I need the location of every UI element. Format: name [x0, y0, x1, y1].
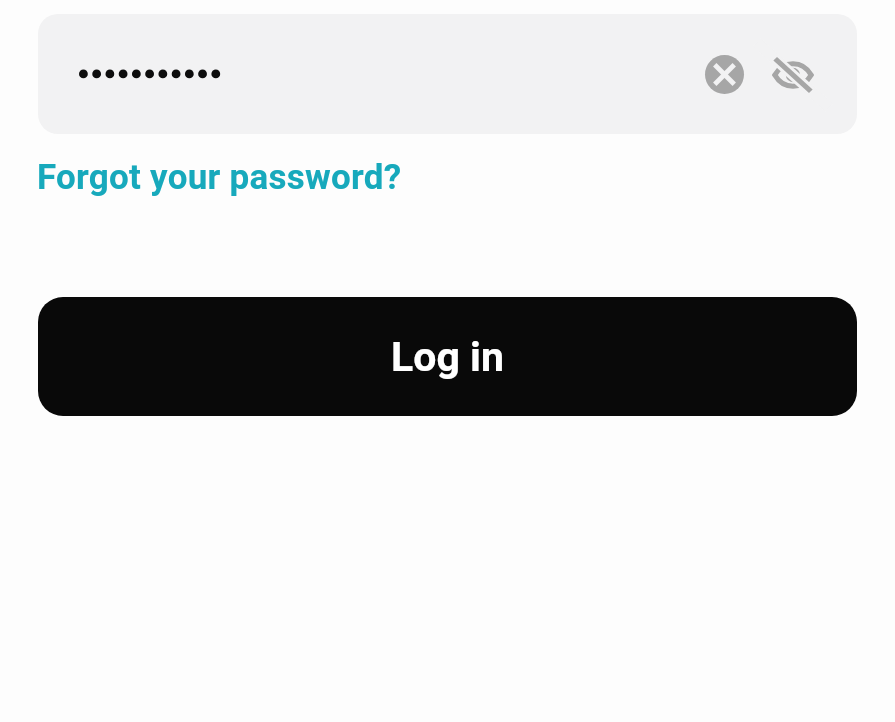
button[interactable]: Clear text — [688, 38, 760, 110]
button[interactable]: Log in — [38, 297, 857, 416]
button[interactable]: Forgot your password? — [37, 157, 402, 198]
staticText: Log in — [391, 333, 504, 381]
button[interactable]: Show password — [757, 39, 829, 111]
button[interactable]: Clear text — [38, 14, 857, 134]
staticText: Forgot your password? — [37, 157, 402, 198]
